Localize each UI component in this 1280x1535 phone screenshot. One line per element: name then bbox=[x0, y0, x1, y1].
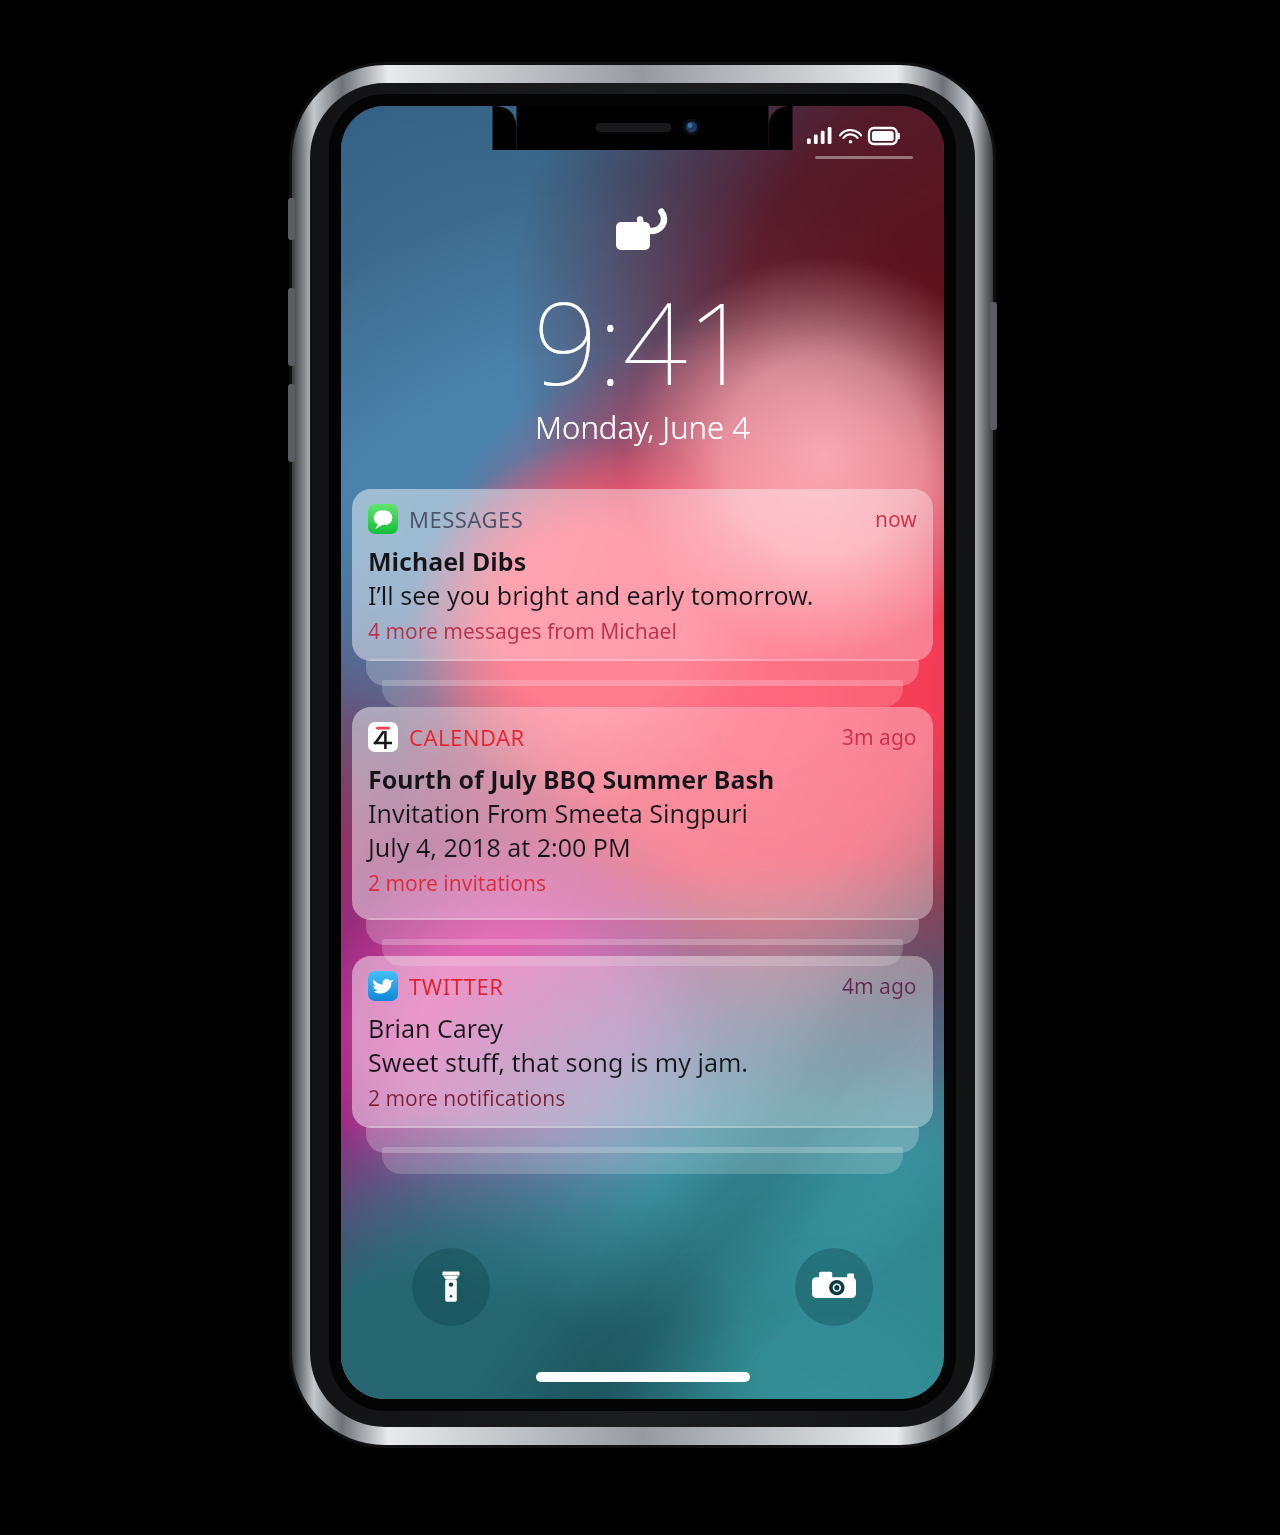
staticText: I’ll see you bright and early tomorrow. bbox=[368, 578, 814, 612]
staticText: Sweet stuff, that song is my jam. bbox=[368, 1045, 749, 1079]
staticText: Monday, June 4 bbox=[535, 406, 750, 448]
staticText: Fourth of July BBQ Summer Bash bbox=[368, 762, 775, 796]
staticText: MESSAGES bbox=[409, 504, 524, 534]
button[interactable]: MESSAGES bbox=[352, 489, 933, 661]
staticText: Invitation From Smeeta Singpuri bbox=[368, 796, 748, 830]
staticText: TWITTER bbox=[409, 971, 504, 1001]
button[interactable]: TWITTER bbox=[352, 956, 933, 1128]
staticText: 4m ago bbox=[842, 972, 917, 1001]
staticText: 4 more messages from Michael bbox=[368, 617, 677, 646]
button[interactable]: CALENDAR bbox=[352, 707, 933, 920]
staticText: July 4, 2018 at 2:00 PM bbox=[368, 830, 631, 864]
staticText: Michael Dibs bbox=[368, 544, 527, 578]
button[interactable]: Camera bbox=[795, 1248, 873, 1326]
staticText: CALENDAR bbox=[409, 722, 525, 752]
staticText: 9:41 bbox=[533, 264, 752, 418]
staticText: 3m ago bbox=[842, 723, 917, 752]
staticText: 2 more notifications bbox=[368, 1084, 566, 1113]
staticText: 2 more invitations bbox=[368, 869, 546, 898]
button[interactable]: Flashlight bbox=[412, 1248, 490, 1326]
staticText: Brian Carey bbox=[368, 1011, 504, 1045]
staticText: now bbox=[875, 505, 917, 534]
